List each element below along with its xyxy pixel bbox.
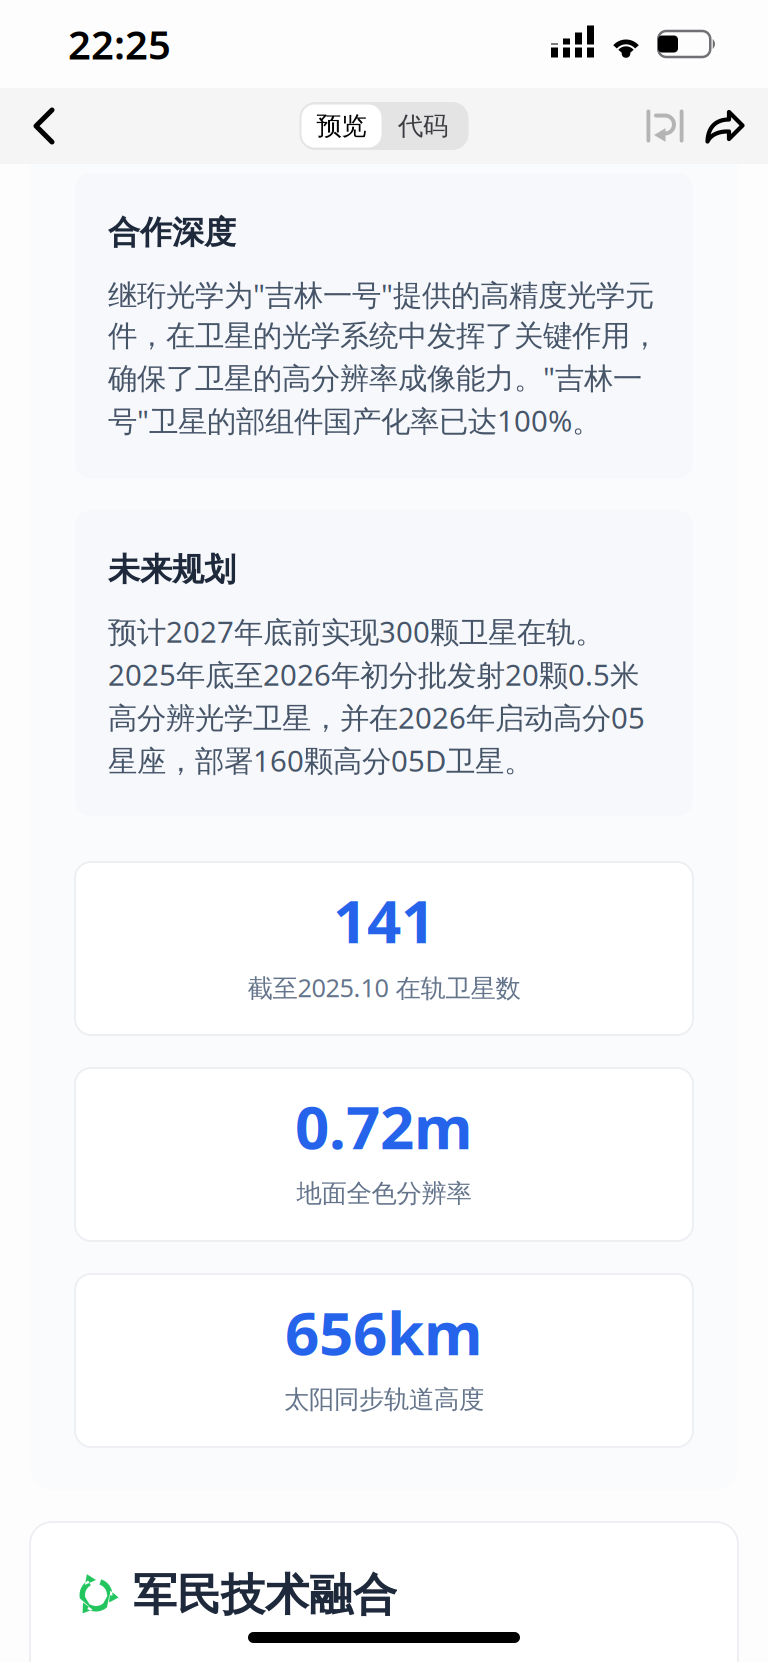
staticText: 截至2025.10 在轨卫星数	[247, 971, 520, 1004]
staticText: 预览	[316, 110, 366, 141]
staticText: 合作深度	[108, 213, 236, 252]
staticText: 656km	[285, 1292, 483, 1372]
button[interactable]: Share	[694, 88, 756, 164]
staticText: 预计2027年底前实现300颗卫星在轨。2025年底至2026年初分批发射20颗…	[108, 612, 645, 780]
staticText: 141	[333, 880, 435, 960]
staticText: 地面全色分辨率	[296, 1178, 471, 1209]
staticText: 未来规划	[108, 550, 236, 589]
button[interactable]: 代码	[381, 104, 464, 147]
staticText: 继珩光学为"吉林一号"提供的高精度光学元件，在卫星的光学系统中发挥了关键作用，确…	[108, 275, 659, 440]
staticText: 22:25	[68, 17, 171, 70]
staticText: 0.72m	[295, 1086, 473, 1166]
staticText: 太阳同步轨道高度	[284, 1384, 484, 1415]
staticText: 军民技术融合	[133, 1568, 397, 1622]
button[interactable]: Rotate	[636, 88, 694, 164]
button[interactable]: Back	[13, 88, 75, 164]
staticText: 代码	[398, 110, 448, 141]
button[interactable]: 预览	[301, 104, 381, 147]
